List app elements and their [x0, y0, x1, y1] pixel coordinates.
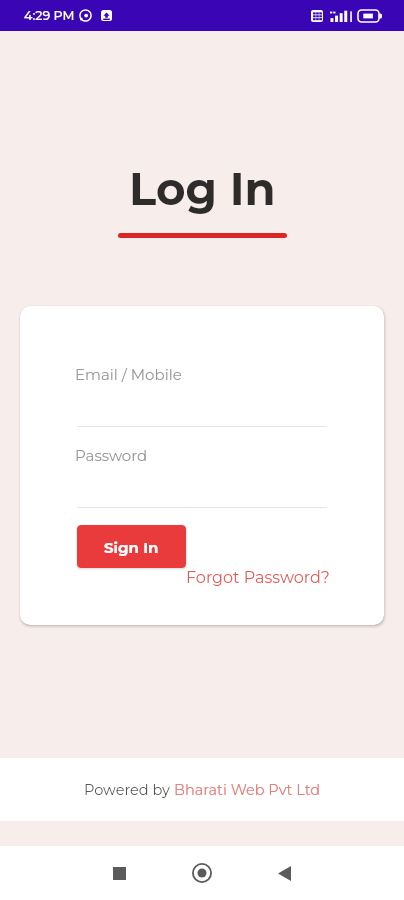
button[interactable]: Recent apps: [95, 846, 143, 900]
button[interactable]: Back: [260, 846, 308, 900]
staticText: Bharati Web Pvt Ltd: [174, 781, 321, 799]
staticText: 4:29 PM: [24, 8, 75, 23]
button[interactable]: Home: [178, 846, 226, 900]
staticText: Forgot Password?: [186, 568, 330, 588]
button[interactable]: Forgot Password?: [186, 568, 330, 588]
staticText: Log In: [129, 161, 276, 216]
staticText: Email / Mobile: [75, 365, 182, 383]
button[interactable]: Sign In: [77, 525, 186, 568]
staticText: Powered by: [84, 781, 174, 799]
staticText: Password: [75, 446, 148, 464]
staticText: Sign In: [104, 538, 159, 556]
